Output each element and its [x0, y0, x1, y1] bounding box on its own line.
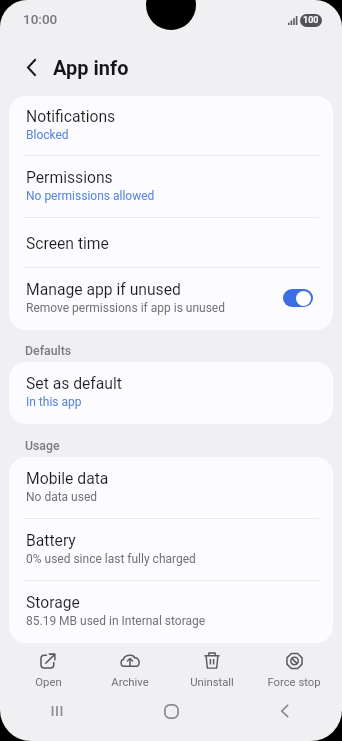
- button[interactable]: Battery: [9, 519, 333, 580]
- staticText: No data used: [26, 490, 98, 504]
- staticText: Manage app if unused: [26, 280, 181, 298]
- staticText: Archive: [111, 676, 149, 689]
- staticText: Defaults: [25, 344, 72, 358]
- button[interactable]: Recents: [0, 698, 114, 724]
- staticText: Blocked: [26, 128, 69, 142]
- staticText: 10:00: [23, 11, 58, 27]
- button[interactable]: Storage: [9, 581, 333, 643]
- staticText: Permissions: [26, 168, 113, 186]
- staticText: Force stop: [267, 676, 321, 689]
- staticText: Open: [35, 676, 62, 689]
- staticText: 85.19 MB used in Internal storage: [26, 614, 206, 628]
- button[interactable]: Force stop: [253, 645, 335, 698]
- button[interactable]: Uninstall: [171, 645, 253, 698]
- staticText: Screen time: [26, 234, 109, 252]
- staticText: 0% used since last fully charged: [26, 552, 196, 566]
- staticText: Notifications: [26, 107, 116, 125]
- button[interactable]: Mobile data: [9, 457, 333, 518]
- staticText: Remove permissions if app is unused: [26, 301, 225, 315]
- staticText: Usage: [25, 439, 60, 453]
- staticText: Uninstall: [190, 676, 234, 689]
- button[interactable]: Permissions: [9, 156, 333, 217]
- staticText: Battery: [26, 531, 76, 549]
- staticText: In this app: [26, 395, 82, 409]
- button[interactable]: Manage app if unused: [9, 268, 333, 330]
- button[interactable]: Archive: [89, 645, 171, 698]
- button[interactable]: Screen time: [9, 218, 333, 267]
- button[interactable]: Notifications: [9, 96, 333, 155]
- staticText: Mobile data: [26, 469, 109, 487]
- button[interactable]: Set as default: [9, 362, 333, 424]
- staticText: Set as default: [26, 374, 122, 392]
- staticText: App info: [53, 56, 129, 79]
- staticText: Storage: [26, 593, 80, 611]
- button[interactable]: Home: [114, 698, 228, 724]
- button[interactable]: Manage app if unused toggle: [283, 289, 313, 307]
- staticText: No permissions allowed: [26, 189, 155, 203]
- button[interactable]: Back: [228, 698, 342, 724]
- button[interactable]: Back: [21, 57, 41, 77]
- button[interactable]: Open: [7, 645, 89, 698]
- staticText: 100: [303, 15, 319, 26]
